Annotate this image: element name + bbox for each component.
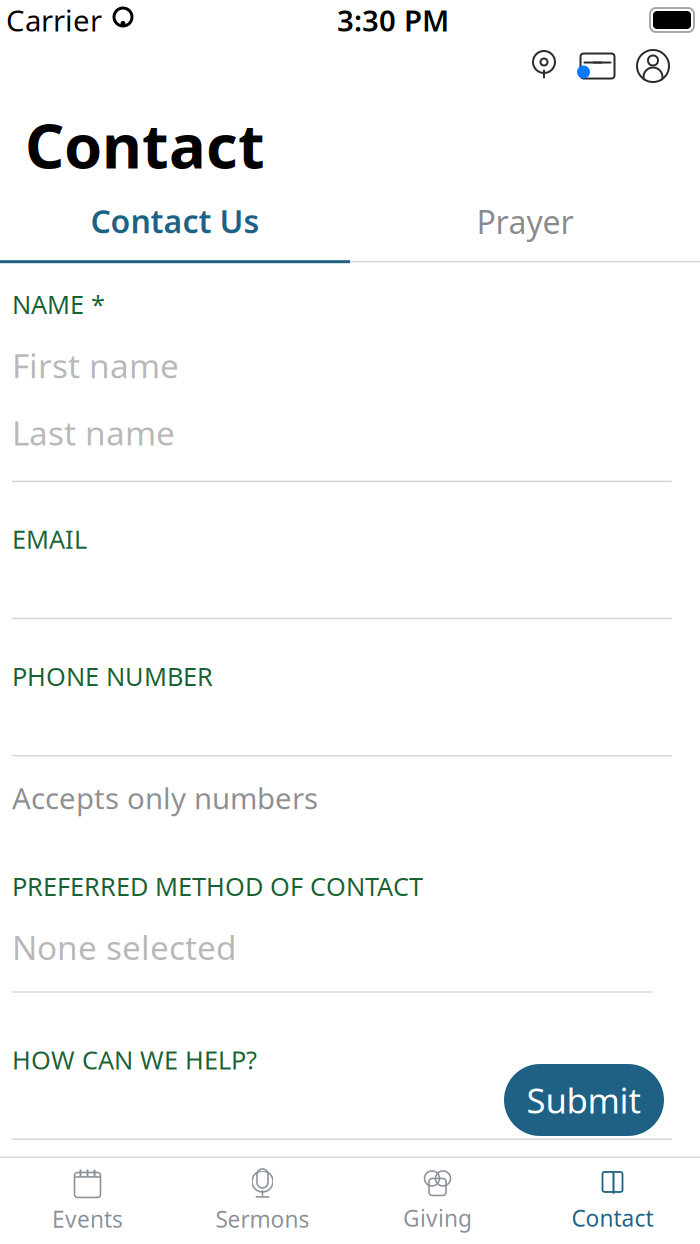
button[interactable]: None selected	[12, 903, 688, 993]
staticText: PREFERRED METHOD OF CONTACT	[12, 869, 423, 903]
staticText: None selected	[12, 925, 237, 969]
button[interactable]: Submit	[504, 1064, 664, 1136]
staticText: Giving	[403, 1203, 472, 1233]
button[interactable]: Contact Us	[0, 200, 350, 263]
staticText: NAME *	[12, 287, 105, 321]
button[interactable]: Locations	[529, 49, 559, 83]
button[interactable]: Giving	[350, 1163, 525, 1239]
staticText: Sermons	[215, 1204, 309, 1234]
button[interactable]: Prayer	[350, 200, 700, 262]
staticText: Contact	[571, 1203, 653, 1233]
button[interactable]: Account	[636, 49, 670, 83]
button[interactable]: Contact	[525, 1163, 700, 1239]
staticText: PHONE NUMBER	[12, 659, 213, 693]
staticText: 3:30 PM	[337, 0, 449, 39]
staticText: Contact Us	[90, 200, 259, 242]
button[interactable]: Events	[0, 1163, 175, 1239]
button[interactable]: Sermons	[175, 1163, 350, 1239]
staticText: Submit	[526, 1077, 641, 1123]
staticText: Prayer	[476, 200, 573, 243]
staticText: HOW CAN WE HELP?	[12, 1043, 257, 1076]
staticText: First name	[12, 343, 179, 387]
staticText: Events	[52, 1204, 123, 1234]
staticText: Accepts only numbers	[12, 778, 318, 817]
staticText: Carrier	[6, 0, 102, 39]
staticText: EMAIL	[12, 522, 87, 556]
button[interactable]: Messages	[577, 50, 617, 82]
staticText: Last name	[12, 410, 175, 455]
staticText: Contact	[25, 104, 265, 185]
